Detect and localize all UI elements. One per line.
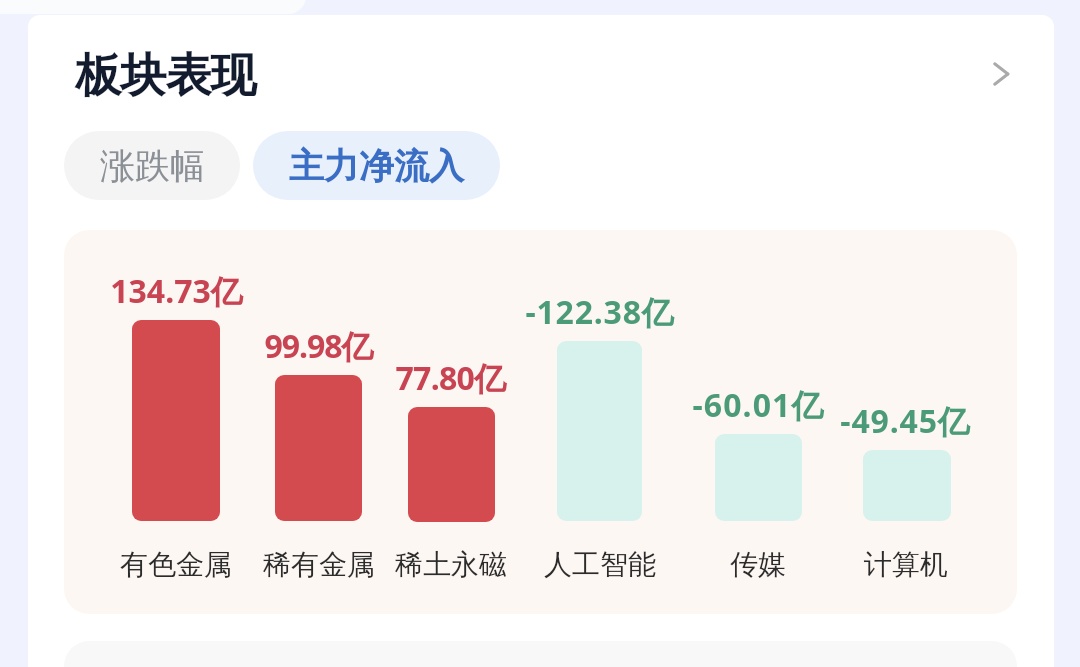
button[interactable]: 涨跌幅: [64, 131, 240, 200]
staticText: 计算机: [864, 547, 948, 582]
staticText: 传媒: [730, 547, 786, 582]
staticText: 人工智能: [544, 547, 656, 582]
staticText: -49.45亿: [840, 399, 971, 443]
staticText: -60.01亿: [692, 383, 825, 427]
button[interactable]: 查看更多: [971, 44, 1031, 104]
staticText: 有色金属: [120, 547, 232, 582]
button[interactable]: 稀有金属: [249, 254, 389, 590]
button[interactable]: 人工智能: [530, 254, 670, 590]
button[interactable]: 134.73亿: [64, 230, 1017, 614]
button[interactable]: 板块表现: [28, 15, 1054, 116]
button[interactable]: 主力净流入: [253, 131, 500, 200]
staticText: 板块表现: [76, 47, 256, 105]
staticText: 134.73亿: [110, 269, 243, 313]
button[interactable]: 计算机: [836, 254, 976, 590]
button[interactable]: 传媒: [688, 254, 828, 590]
button[interactable]: 有色金属: [106, 254, 246, 590]
staticText: -122.38亿: [525, 290, 675, 334]
staticText: 主力净流入: [289, 144, 464, 188]
staticText: 77.80亿: [395, 356, 506, 400]
staticText: 稀有金属: [263, 547, 375, 582]
staticText: 稀土永磁: [395, 547, 507, 582]
staticText: 涨跌幅: [100, 144, 205, 188]
staticText: 99.98亿: [264, 324, 373, 368]
button[interactable]: 稀土永磁: [381, 254, 521, 590]
